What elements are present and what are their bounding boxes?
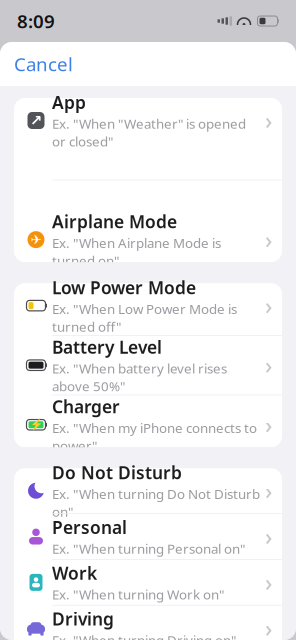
staticText: › (265, 105, 272, 135)
staticText: Ex. "When turning Personal on" (52, 540, 245, 557)
staticText: Low Power Mode (52, 276, 196, 299)
staticText: Ex. "When turning Driving on" (52, 631, 236, 640)
staticText: Ex. "When turning Work on" (52, 585, 224, 603)
staticText: › (265, 567, 272, 597)
staticText: › (265, 613, 272, 640)
staticText: Battery Level (52, 335, 162, 358)
button[interactable]: ✈ (14, 217, 282, 262)
button[interactable]: ↗ (14, 98, 282, 217)
staticText: Work (52, 561, 97, 584)
staticText: Personal (52, 516, 127, 539)
staticText: Cancel (14, 52, 73, 76)
staticText: › (265, 521, 272, 552)
staticText: 8:09 (17, 9, 55, 33)
button[interactable]: Work (14, 560, 282, 606)
staticText: Charger (52, 395, 120, 418)
staticText: › (265, 350, 272, 380)
staticText: Ex. "When battery level rises above 50%" (52, 359, 227, 395)
staticText: › (265, 476, 272, 506)
button[interactable]: ⚡ (14, 402, 282, 447)
staticText: Ex. "When "Weather" is opened or closed" (52, 115, 246, 150)
staticText: › (265, 291, 272, 321)
staticText: Driving (52, 607, 114, 630)
staticText: Do Not Disturb (52, 461, 182, 484)
staticText: Ex. "When turning Do Not Disturb on" (52, 485, 260, 520)
staticText: Ex. "When my iPhone connects to power" (52, 419, 257, 454)
staticText: Airplane Mode (52, 210, 177, 233)
staticText: App (52, 91, 86, 114)
staticText: Ex. "When Low Power Mode is turned off" (52, 300, 237, 335)
button[interactable]: Personal (14, 514, 282, 560)
staticText: ✈ (30, 232, 41, 247)
staticText: › (265, 410, 272, 440)
staticText: Ex. "When Airplane Mode is turned on" (52, 234, 221, 269)
staticText: ⚡ (29, 419, 42, 431)
button[interactable]: Cancel (0, 40, 87, 88)
button[interactable]: Do Not Disturb (14, 468, 282, 514)
staticText: ↗ (30, 112, 42, 129)
staticText: › (265, 225, 272, 255)
button[interactable]: Battery Level (14, 343, 282, 402)
button[interactable]: Driving (14, 606, 282, 640)
button[interactable]: Low Power Mode (14, 283, 282, 343)
